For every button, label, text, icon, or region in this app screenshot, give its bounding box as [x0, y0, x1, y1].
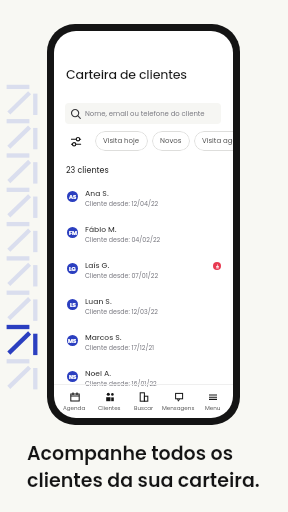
staticText: FM: [69, 229, 77, 237]
button[interactable]: NS: [54, 367, 233, 388]
staticText: LG: [69, 265, 76, 273]
staticText: Agenda: [63, 404, 86, 412]
staticText: Luan S.: [85, 296, 112, 307]
button[interactable]: MS: [54, 331, 233, 367]
staticText: Visita agendada: [202, 136, 233, 146]
staticText: LS: [70, 301, 76, 309]
staticText: NS: [69, 373, 77, 381]
button[interactable]: Menu: [196, 392, 229, 412]
staticText: Noel A.: [85, 368, 112, 379]
button[interactable]: Novos: [152, 131, 190, 151]
button[interactable]: Visita agendada: [194, 131, 233, 151]
staticText: Buscar: [134, 404, 154, 412]
button[interactable]: Mensagens: [162, 392, 195, 412]
staticText: Cliente desde: 12/04/22: [85, 199, 159, 208]
staticText: AS: [69, 193, 77, 201]
staticText: Cliente desde: 04/02/22: [85, 235, 161, 244]
staticText: Laís G.: [85, 260, 110, 271]
staticText: Cliente desde: 16/01/22: [85, 379, 157, 388]
staticText: Fábio M.: [85, 224, 117, 235]
button[interactable]: AS: [54, 187, 233, 223]
staticText: Clientes: [98, 404, 121, 412]
button[interactable]: Filtros: [68, 134, 84, 150]
button[interactable]: LG: [54, 259, 233, 295]
staticText: MS: [68, 337, 77, 345]
button[interactable]: LS: [54, 295, 233, 331]
staticText: Nome, email ou telefone do cliente: [85, 109, 205, 119]
button[interactable]: Agenda: [58, 392, 91, 412]
staticText: Mensagens: [162, 404, 195, 412]
staticText: Carteira de clientes: [66, 66, 187, 84]
button[interactable]: FM: [54, 223, 233, 259]
staticText: Ana S.: [85, 188, 109, 199]
button[interactable]: Buscar: [127, 392, 160, 412]
staticText: Cliente desde: 07/01/22: [85, 271, 158, 280]
staticText: Menu: [205, 404, 221, 412]
staticText: Marcos S.: [85, 332, 122, 343]
staticText: Cliente desde: 17/12/21: [85, 343, 155, 352]
button[interactable]: Clientes: [93, 392, 126, 412]
staticText: Acompanhe todos os: [27, 440, 234, 467]
staticText: 23 clientes: [66, 165, 109, 176]
staticText: Visita hoje: [103, 136, 140, 146]
staticText: clientes da sua carteira.: [27, 467, 260, 494]
button[interactable]: Nome, email ou telefone do cliente: [65, 103, 221, 124]
staticText: Cliente desde: 12/03/22: [85, 307, 158, 316]
staticText: Novos: [160, 136, 182, 146]
button[interactable]: Visita hoje: [95, 131, 148, 151]
